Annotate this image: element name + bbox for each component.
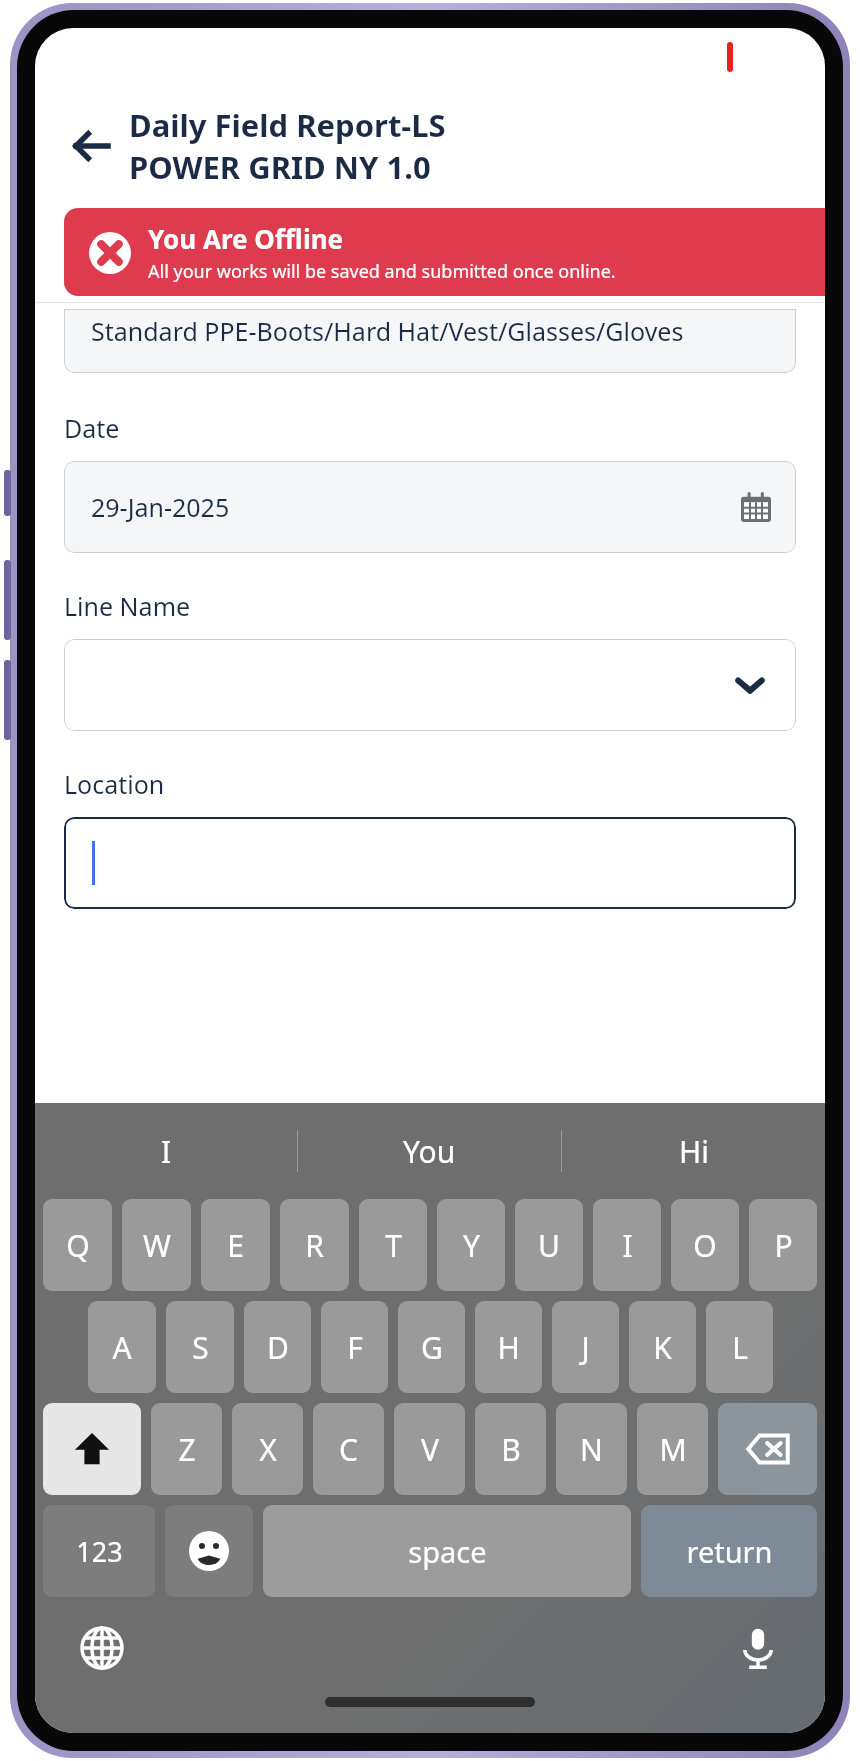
staticText: A xyxy=(112,1327,132,1368)
button[interactable] xyxy=(64,817,796,909)
button[interactable]: Change keyboard xyxy=(73,1619,131,1677)
staticText: B xyxy=(501,1429,521,1470)
staticText: W xyxy=(143,1225,171,1266)
button[interactable]: Back xyxy=(63,118,119,174)
button[interactable]: F xyxy=(321,1301,388,1393)
button[interactable]: 29-Jan-2025 xyxy=(64,461,796,553)
button[interactable]: C xyxy=(313,1403,384,1495)
other: Pick date xyxy=(738,489,774,525)
staticText: L xyxy=(732,1327,748,1368)
button[interactable]: U xyxy=(515,1199,583,1291)
button[interactable]: P xyxy=(749,1199,817,1291)
staticText: M xyxy=(659,1429,687,1470)
staticText: H xyxy=(497,1327,520,1368)
button[interactable]: T xyxy=(359,1199,427,1291)
staticText: Hi xyxy=(679,1131,709,1172)
button[interactable]: return xyxy=(641,1505,817,1597)
button[interactable]: Emoji xyxy=(165,1505,253,1597)
staticText: E xyxy=(227,1225,244,1266)
staticText: R xyxy=(305,1225,324,1266)
staticText: POWER GRID NY 1.0 xyxy=(129,146,431,188)
button[interactable]: D xyxy=(244,1301,311,1393)
button[interactable]: J xyxy=(552,1301,619,1393)
staticText: 123 xyxy=(76,1533,123,1570)
button[interactable]: K xyxy=(629,1301,696,1393)
staticText: N xyxy=(580,1429,603,1470)
button[interactable]: B xyxy=(475,1403,546,1495)
staticText: Line Name xyxy=(64,589,191,623)
button[interactable]: Backspace xyxy=(718,1403,817,1495)
staticText: D xyxy=(267,1327,289,1368)
button[interactable]: You Are Offline xyxy=(64,208,825,296)
staticText: Date xyxy=(64,411,120,445)
button[interactable]: Open dropdown xyxy=(64,639,796,731)
button[interactable]: R xyxy=(280,1199,349,1291)
button[interactable]: G xyxy=(398,1301,465,1393)
staticText: S xyxy=(192,1327,209,1368)
staticText: Y xyxy=(463,1225,480,1266)
staticText: V xyxy=(421,1429,439,1470)
staticText: Daily Field Report-LS xyxy=(129,104,446,146)
button[interactable]: space xyxy=(263,1505,631,1597)
button[interactable]: You xyxy=(298,1103,561,1199)
button[interactable]: Hi xyxy=(562,1103,825,1199)
staticText: K xyxy=(653,1327,672,1368)
button[interactable]: W xyxy=(122,1199,191,1291)
staticText: C xyxy=(339,1429,358,1470)
staticText: Location xyxy=(64,767,165,801)
button[interactable]: V xyxy=(394,1403,465,1495)
button[interactable]: O xyxy=(671,1199,739,1291)
button[interactable]: A xyxy=(88,1301,156,1393)
button[interactable]: I xyxy=(593,1199,661,1291)
button[interactable]: Dictate xyxy=(729,1619,787,1677)
staticText: 29-Jan-2025 xyxy=(91,490,230,524)
button[interactable]: H xyxy=(475,1301,542,1393)
staticText: I xyxy=(161,1131,172,1172)
staticText: Q xyxy=(66,1225,90,1266)
button[interactable]: M xyxy=(637,1403,708,1495)
button[interactable]: 123 xyxy=(43,1505,155,1597)
button[interactable]: Z xyxy=(151,1403,222,1495)
button[interactable]: Shift xyxy=(43,1403,141,1495)
button[interactable]: X xyxy=(232,1403,303,1495)
staticText: T xyxy=(385,1225,402,1266)
staticText: G xyxy=(421,1327,443,1368)
staticText: U xyxy=(538,1225,560,1266)
other: Open dropdown xyxy=(732,667,768,703)
button[interactable]: N xyxy=(556,1403,627,1495)
button[interactable]: Standard PPE-Boots/Hard Hat/Vest/Glasses… xyxy=(64,309,796,373)
staticText: return xyxy=(686,1532,773,1571)
staticText: X xyxy=(259,1429,277,1470)
staticText: You Are Offline xyxy=(148,221,344,256)
staticText: space xyxy=(408,1532,487,1571)
button[interactable]: E xyxy=(201,1199,270,1291)
button[interactable]: L xyxy=(706,1301,773,1393)
button[interactable]: I xyxy=(35,1103,297,1199)
staticText: O xyxy=(693,1225,717,1266)
staticText: Standard PPE-Boots/Hard Hat/Vest/Glasses… xyxy=(91,314,684,348)
staticText: Z xyxy=(178,1429,196,1470)
staticText: All your works will be saved and submitt… xyxy=(148,259,616,284)
staticText: You xyxy=(403,1131,456,1172)
staticText: F xyxy=(347,1327,363,1368)
button[interactable]: S xyxy=(166,1301,234,1393)
button[interactable]: Y xyxy=(437,1199,505,1291)
staticText: I xyxy=(622,1225,633,1266)
button[interactable]: Q xyxy=(43,1199,112,1291)
staticText: J xyxy=(581,1327,590,1368)
staticText: P xyxy=(774,1225,793,1266)
